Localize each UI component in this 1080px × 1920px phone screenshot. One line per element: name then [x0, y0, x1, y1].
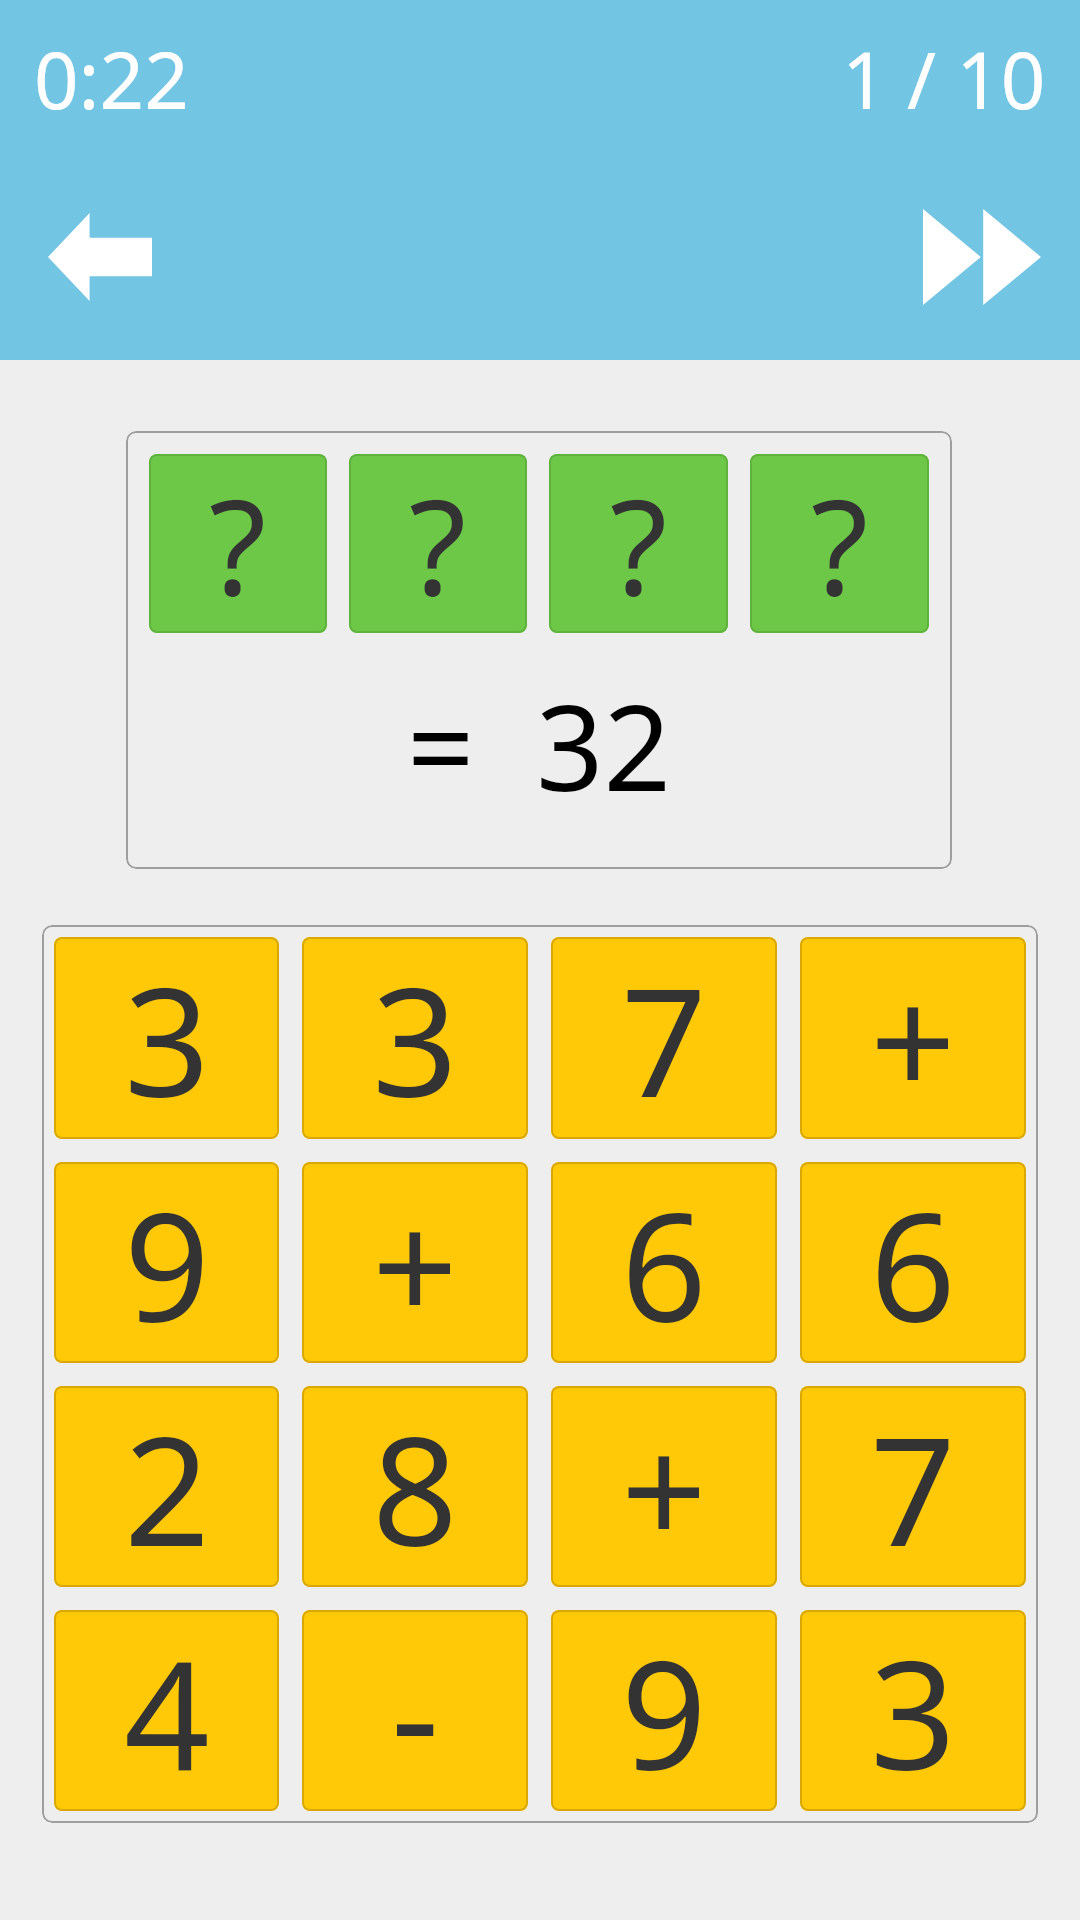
button[interactable]: -: [302, 1610, 528, 1811]
staticText: 1 / 10: [842, 26, 1046, 132]
staticText: 0:22: [34, 26, 189, 132]
staticText: ?: [209, 454, 267, 633]
staticText: 6: [621, 1162, 707, 1363]
button[interactable]: Back: [20, 182, 180, 332]
staticText: 9: [124, 1162, 210, 1363]
staticText: 7: [870, 1386, 956, 1587]
button[interactable]: ?: [349, 454, 527, 633]
staticText: 3: [124, 937, 210, 1139]
button[interactable]: 4: [54, 1610, 279, 1811]
staticText: 8: [372, 1386, 458, 1587]
staticText: 6: [870, 1162, 956, 1363]
button[interactable]: +: [551, 1386, 777, 1587]
button[interactable]: 3: [302, 937, 528, 1139]
button[interactable]: +: [800, 937, 1026, 1139]
staticText: 3: [372, 937, 458, 1139]
button[interactable]: 8: [302, 1386, 528, 1587]
button[interactable]: 2: [54, 1386, 279, 1587]
button[interactable]: Skip: [902, 182, 1062, 332]
staticText: ?: [610, 454, 668, 633]
button[interactable]: 6: [800, 1162, 1026, 1363]
staticText: 7: [621, 937, 707, 1139]
button[interactable]: 9: [54, 1162, 279, 1363]
staticText: 2: [124, 1386, 210, 1587]
staticText: +: [372, 1162, 458, 1363]
staticText: 3: [870, 1610, 956, 1811]
button[interactable]: 7: [800, 1386, 1026, 1587]
staticText: 9: [621, 1610, 707, 1811]
button[interactable]: ?: [549, 454, 728, 633]
button[interactable]: 7: [551, 937, 777, 1139]
button[interactable]: +: [302, 1162, 528, 1363]
staticText: +: [621, 1386, 707, 1587]
button[interactable]: 3: [54, 937, 279, 1139]
staticText: 4: [124, 1610, 210, 1811]
button[interactable]: ?: [750, 454, 929, 633]
staticText: ?: [409, 454, 467, 633]
staticText: ?: [811, 454, 869, 633]
staticText: -: [391, 1610, 440, 1811]
button[interactable]: 3: [800, 1610, 1026, 1811]
staticText: = 32: [407, 665, 671, 826]
staticText: +: [870, 937, 956, 1139]
button[interactable]: 6: [551, 1162, 777, 1363]
button[interactable]: ?: [149, 454, 327, 633]
button[interactable]: 9: [551, 1610, 777, 1811]
